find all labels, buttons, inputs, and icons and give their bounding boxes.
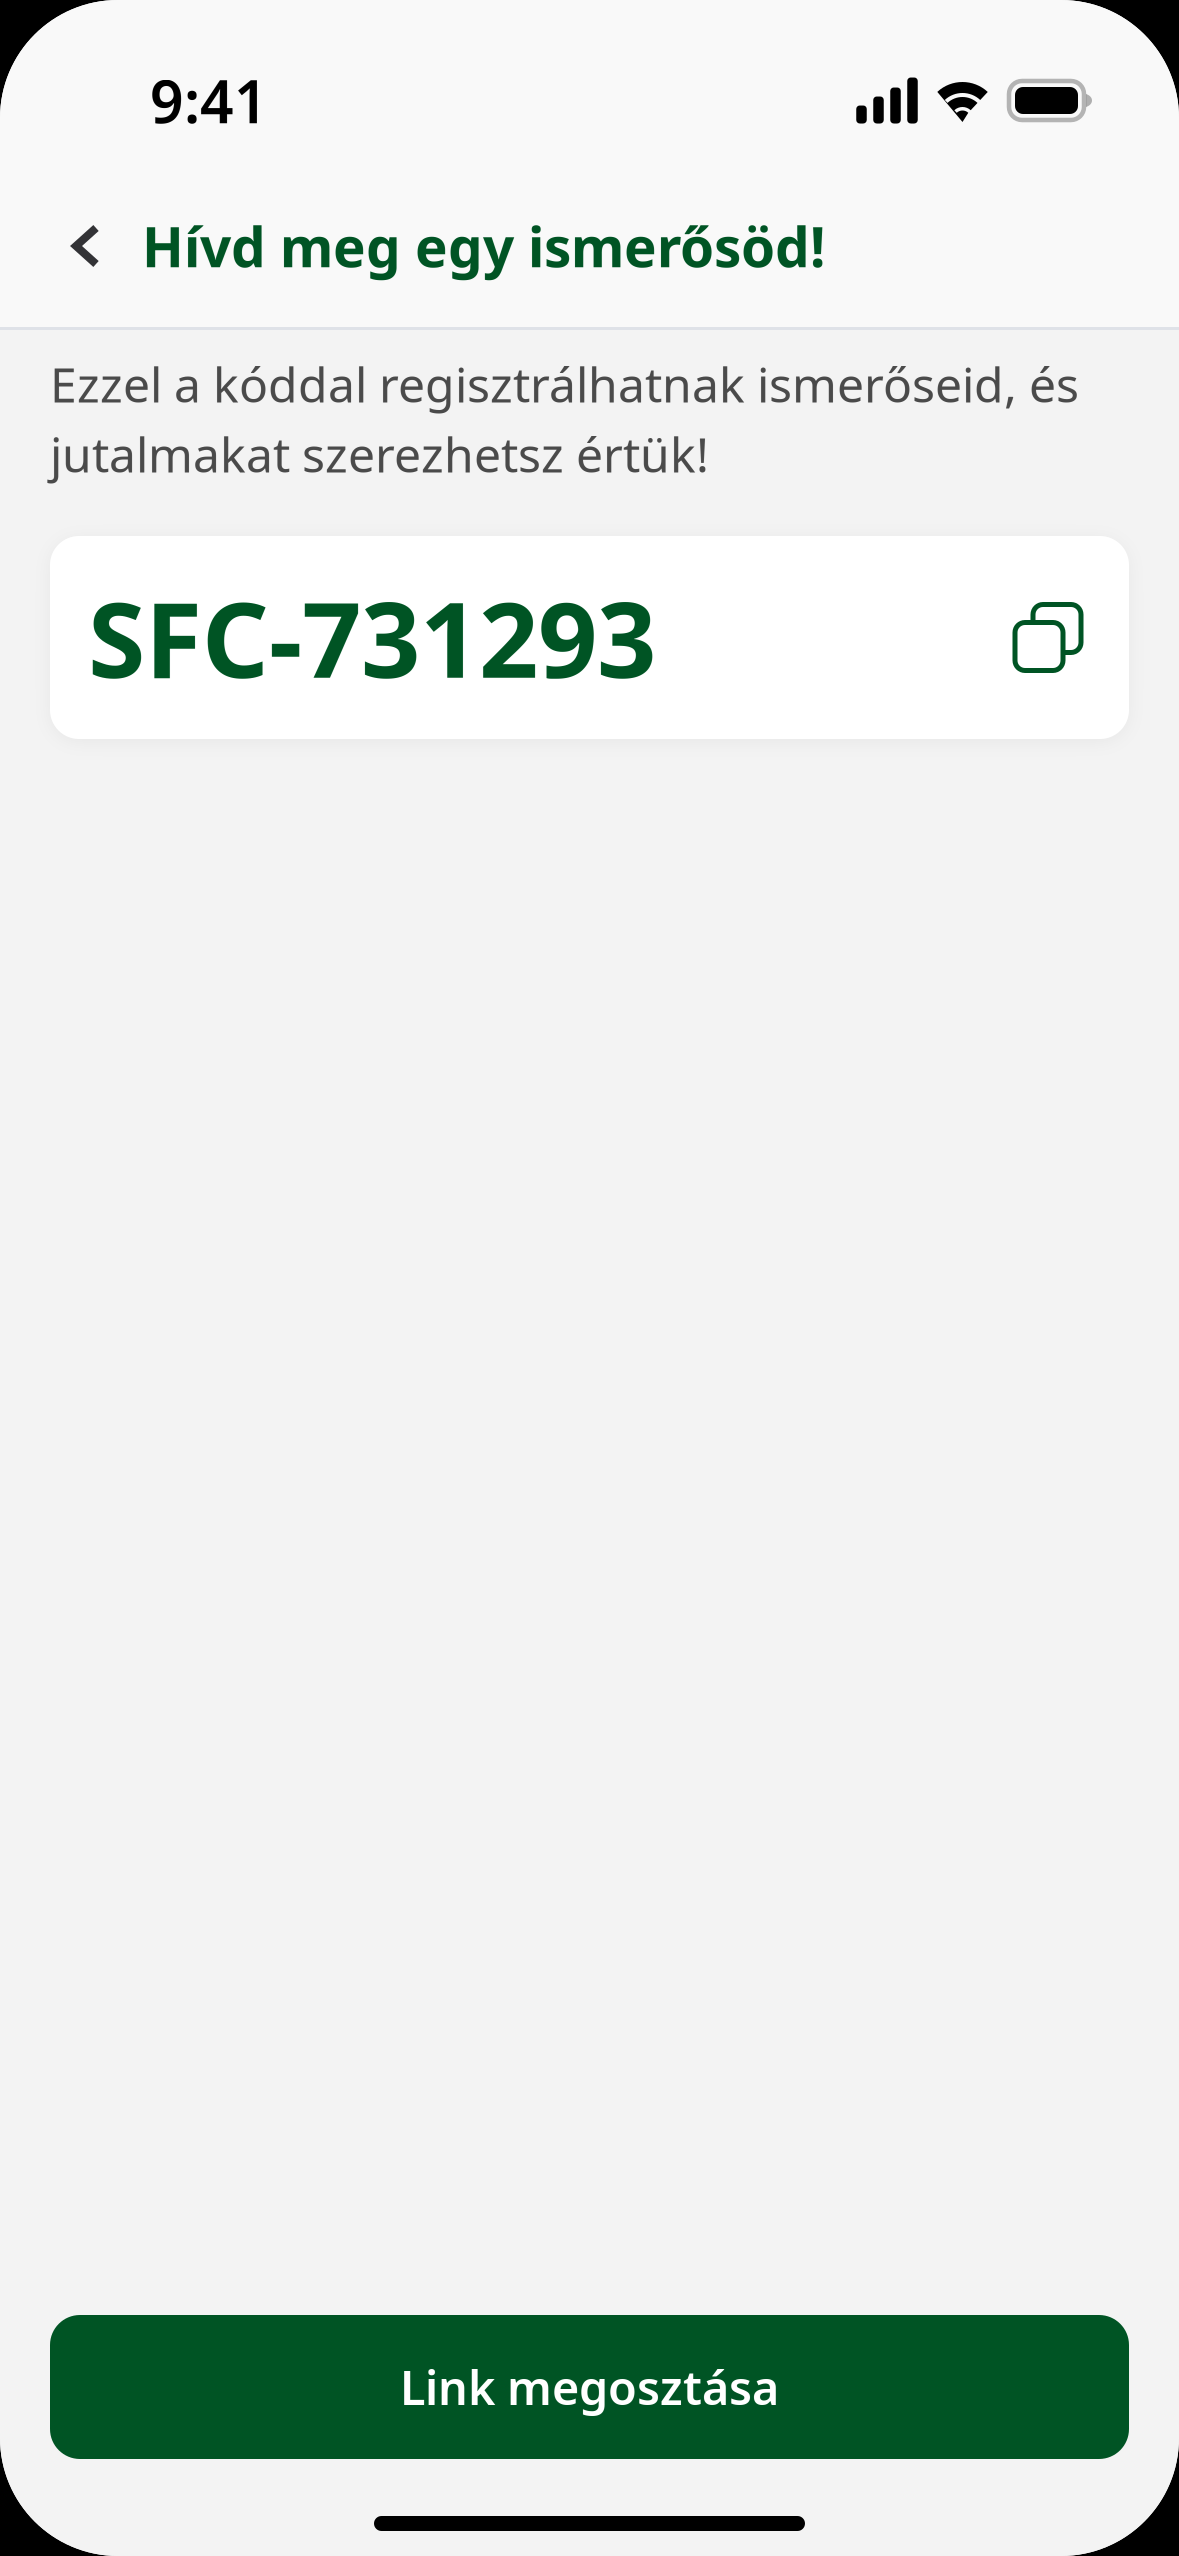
button[interactable]: Link megosztása <box>50 2315 1129 2459</box>
staticText: jutalmakat szerezhetsz értük! <box>50 422 709 486</box>
staticText: 9:41 <box>150 61 268 139</box>
staticText: Link megosztása <box>400 2356 779 2418</box>
button[interactable]: Vissza <box>0 184 142 308</box>
button[interactable]: Kód másolása <box>1001 580 1095 694</box>
staticText: Ezzel a kóddal regisztrálhatnak ismerőse… <box>50 352 1079 416</box>
staticText: SFC-731293 <box>88 568 656 706</box>
staticText: Hívd meg egy ismerősöd! <box>142 210 825 282</box>
